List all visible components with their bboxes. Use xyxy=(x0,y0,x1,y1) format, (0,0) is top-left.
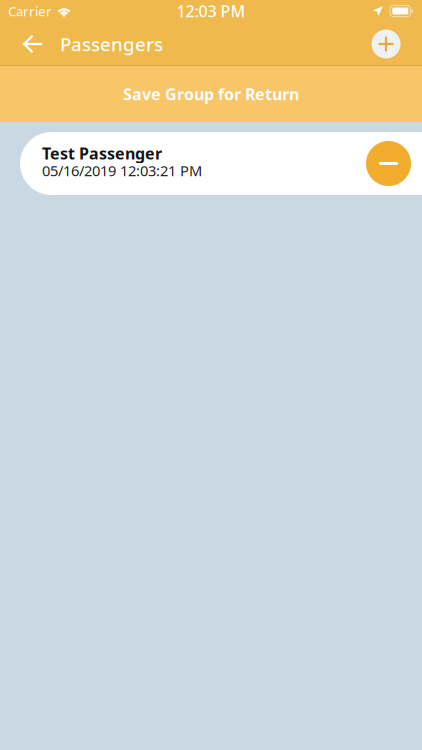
staticText: Passengers xyxy=(60,32,163,56)
staticText: 12:03 PM xyxy=(176,0,245,22)
button[interactable]: Save Group for Return xyxy=(0,66,422,122)
staticText: Save Group for Return xyxy=(123,83,299,105)
button[interactable]: Add passenger xyxy=(364,22,408,66)
button[interactable]: Test Passenger xyxy=(42,132,202,195)
staticText: Carrier xyxy=(8,2,52,20)
button[interactable]: Remove passenger xyxy=(366,141,411,186)
staticText: Test Passenger xyxy=(42,143,162,164)
staticText: 05/16/2019 12:03:21 PM xyxy=(42,161,202,180)
button[interactable]: Back xyxy=(0,22,44,66)
